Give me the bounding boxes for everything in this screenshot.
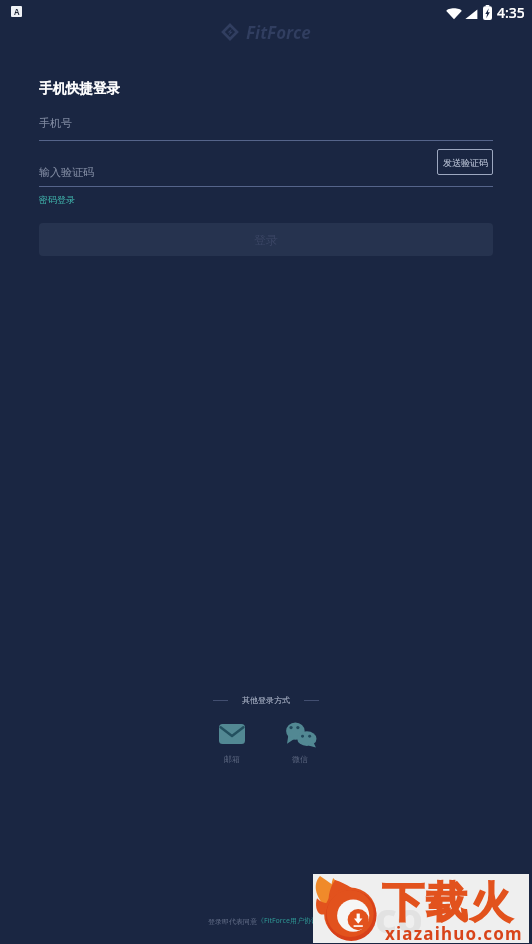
staticText: 其他登录方式 xyxy=(242,695,290,705)
staticText: 登录 xyxy=(254,232,278,247)
staticText: FitForce xyxy=(246,21,311,43)
staticText: 邮箱 xyxy=(224,754,240,764)
staticText: 《FitForce用户协议》 xyxy=(257,916,325,926)
staticText: 4:35 xyxy=(497,3,525,22)
button[interactable]: 发送验证码 xyxy=(437,149,493,175)
button[interactable]: 微信登录 xyxy=(267,719,333,767)
button[interactable]: 邮箱登录 xyxy=(199,719,265,767)
staticText: 手机快捷登录 xyxy=(39,80,120,97)
staticText: A xyxy=(14,6,20,17)
staticText: 输入验证码 xyxy=(39,165,94,179)
button[interactable]: 密码登录 xyxy=(39,193,75,206)
staticText: co xyxy=(375,888,423,944)
button[interactable]: 输入验证码 xyxy=(39,158,493,185)
staticText: 手机号 xyxy=(39,116,72,130)
staticText: 发送验证码 xyxy=(443,157,488,168)
staticText: 微信 xyxy=(292,754,308,764)
staticText: 密码登录 xyxy=(39,194,75,205)
staticText: xiazaihuo.com xyxy=(385,922,523,944)
staticText: 登录即代表同意 xyxy=(208,917,257,926)
staticText: 下载火 xyxy=(381,877,513,930)
button[interactable]: 手机号 xyxy=(39,112,493,134)
button[interactable]: 《FitForce用户协议》 xyxy=(257,916,325,926)
